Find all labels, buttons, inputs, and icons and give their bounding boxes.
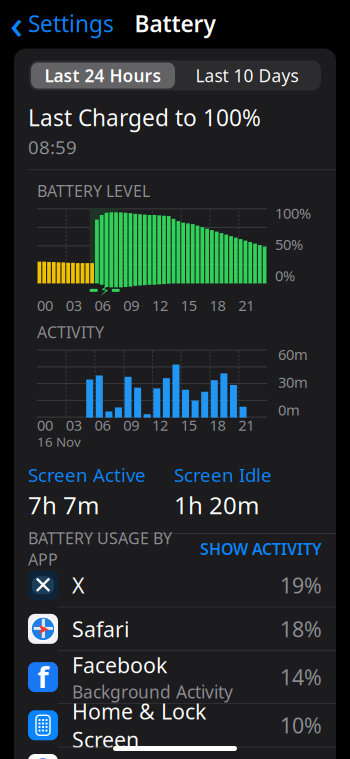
button[interactable]: Home & Lock Screen bbox=[14, 703, 336, 747]
staticText: 03 bbox=[66, 296, 82, 315]
staticText: 06 bbox=[94, 415, 110, 435]
button[interactable]: ✛ bbox=[14, 607, 336, 650]
button[interactable]: Photos bbox=[14, 747, 336, 759]
staticText: 15 bbox=[181, 415, 197, 435]
staticText: 18 bbox=[209, 415, 225, 435]
staticText: f bbox=[37, 657, 48, 696]
staticText: Screen Active bbox=[28, 462, 146, 487]
staticText: ✕ bbox=[33, 572, 53, 599]
staticText: Last Charged to 100% bbox=[28, 102, 261, 133]
staticText: Settings bbox=[28, 8, 114, 39]
staticText: Last 10 Days bbox=[195, 64, 298, 87]
staticText: ➤ bbox=[37, 621, 49, 637]
button[interactable]: Last 24 Hours bbox=[31, 62, 175, 88]
staticText: 21 bbox=[238, 415, 254, 435]
staticText: 21 bbox=[238, 296, 254, 315]
staticText: 06 bbox=[94, 296, 110, 315]
staticText: 30m bbox=[278, 372, 308, 392]
staticText: ACTIVITY bbox=[37, 321, 104, 343]
staticText: 00 bbox=[37, 415, 53, 435]
staticText: 16 Nov bbox=[37, 433, 81, 450]
staticText: 100% bbox=[275, 203, 311, 223]
staticText: 19% bbox=[280, 571, 322, 599]
button[interactable]: ✕ bbox=[14, 564, 336, 607]
button[interactable]: Last 10 Days bbox=[175, 62, 319, 88]
staticText: Background Activity bbox=[72, 680, 233, 703]
staticText: ‹ bbox=[10, 0, 23, 50]
button[interactable]: f bbox=[14, 650, 336, 703]
staticText: 60m bbox=[278, 345, 308, 364]
staticText: Home & Lock Screen bbox=[72, 697, 206, 754]
staticText: 08:59 bbox=[28, 135, 77, 159]
staticText: 7h 7m bbox=[28, 489, 99, 521]
staticText: 18 bbox=[209, 296, 225, 315]
staticText: Last 24 Hours bbox=[44, 64, 161, 87]
staticText: 12 bbox=[152, 296, 168, 315]
button[interactable]: ‹ bbox=[0, 0, 114, 54]
staticText: 0% bbox=[275, 266, 295, 285]
staticText: X bbox=[72, 571, 85, 599]
staticText: 09 bbox=[123, 415, 139, 435]
staticText: 12 bbox=[152, 415, 168, 435]
staticText: ✛ bbox=[32, 614, 54, 644]
staticText: 09 bbox=[123, 296, 139, 315]
staticText: 14% bbox=[280, 663, 322, 691]
staticText: Safari bbox=[72, 615, 130, 643]
staticText: Battery bbox=[134, 8, 215, 39]
staticText: 00 bbox=[37, 296, 53, 315]
staticText: 18% bbox=[280, 615, 322, 643]
staticText: Screen Idle bbox=[174, 462, 272, 487]
staticText: 15 bbox=[181, 296, 197, 315]
button[interactable]: SHOW ACTIVITY bbox=[200, 538, 322, 559]
staticText: ⚡︎ bbox=[100, 282, 110, 299]
staticText: BATTERY USAGE BY APP bbox=[28, 527, 172, 570]
staticText: Facebook bbox=[72, 651, 167, 679]
staticText: 10% bbox=[280, 711, 322, 739]
staticText: 50% bbox=[275, 235, 303, 254]
staticText: 03 bbox=[66, 415, 82, 435]
staticText: 0m bbox=[278, 400, 300, 420]
staticText: BATTERY LEVEL bbox=[37, 180, 150, 201]
staticText: 1h 20m bbox=[174, 489, 259, 521]
staticText: SHOW ACTIVITY bbox=[200, 538, 322, 559]
